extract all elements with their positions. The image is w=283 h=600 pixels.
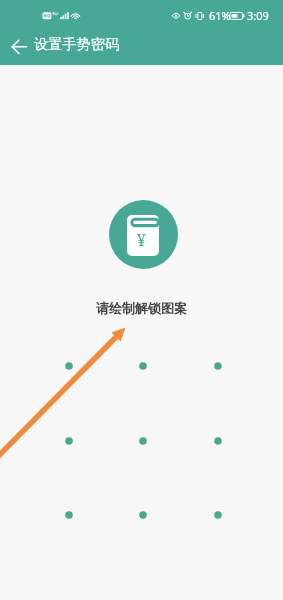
staticText: 61% [209,8,231,23]
button[interactable]: Pattern dot 5 [131,429,155,453]
staticText: 3:09 [247,8,269,23]
button[interactable]: Pattern dot 4 [57,429,81,453]
staticText: ¥ [137,229,146,250]
button[interactable]: Pattern dot 2 [131,354,155,378]
button[interactable]: Pattern dot 7 [57,503,81,527]
staticText: 设置手势密码 [34,35,120,53]
button[interactable]: Back [3,28,43,65]
staticText: 请绘制解锁图案 [96,300,187,316]
button[interactable]: Pattern dot 6 [206,429,230,453]
button[interactable]: Pattern dot 8 [131,503,155,527]
button[interactable]: Pattern dot 3 [206,354,230,378]
button[interactable]: Pattern dot 9 [206,503,230,527]
button[interactable]: Pattern dot 1 [57,354,81,378]
